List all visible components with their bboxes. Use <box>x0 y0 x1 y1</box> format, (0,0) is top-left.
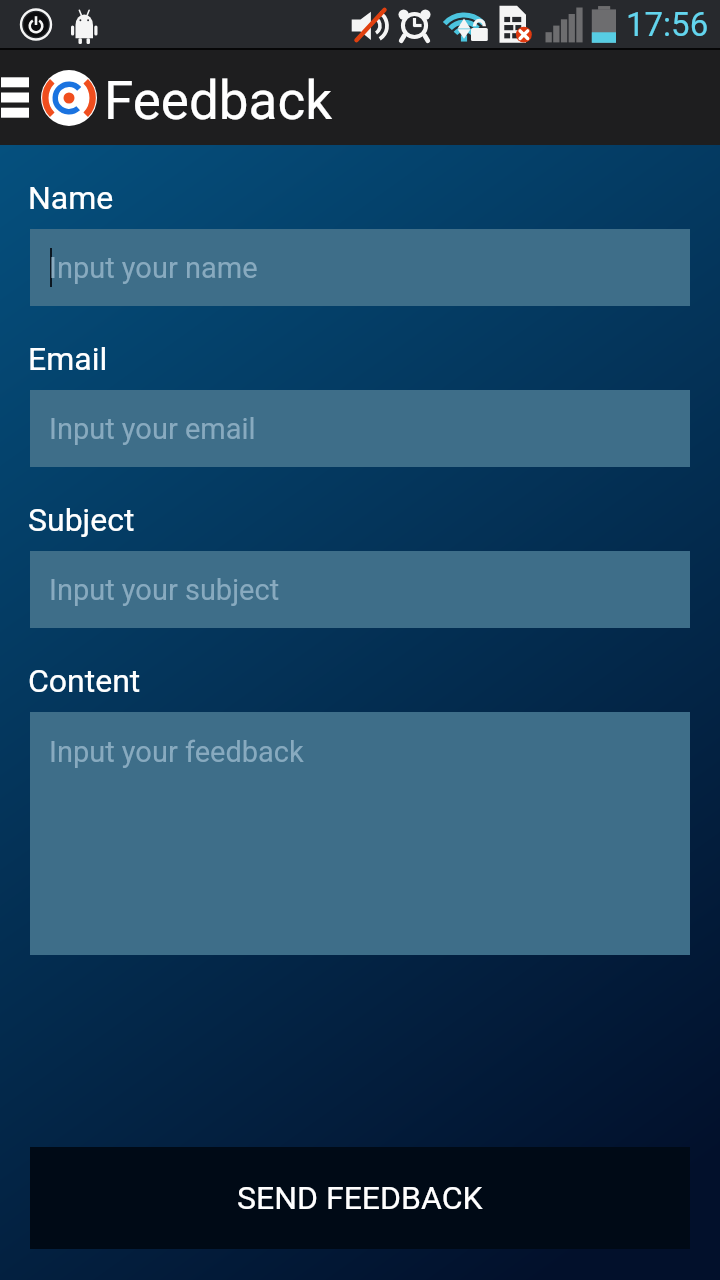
staticText: Subject <box>28 501 135 539</box>
button[interactable]: Input your email <box>30 390 690 467</box>
staticText: Name <box>28 179 114 217</box>
staticText: Input your email <box>49 412 256 446</box>
staticText: Input your subject <box>49 573 280 607</box>
button[interactable]: SEND FEEDBACK <box>30 1147 690 1249</box>
staticText: Feedback <box>104 70 333 132</box>
button[interactable]: Input your feedback <box>30 712 690 955</box>
staticText: SEND FEEDBACK <box>237 1179 483 1217</box>
staticText: Email <box>28 340 108 378</box>
staticText: Input your feedback <box>49 735 304 769</box>
staticText: 17:56 <box>626 5 709 44</box>
button[interactable]: Input your name <box>30 229 690 306</box>
staticText: Input your name <box>49 251 258 285</box>
button[interactable]: Open navigation menu <box>0 50 30 145</box>
button[interactable]: Input your subject <box>30 551 690 628</box>
staticText: Content <box>28 662 141 700</box>
